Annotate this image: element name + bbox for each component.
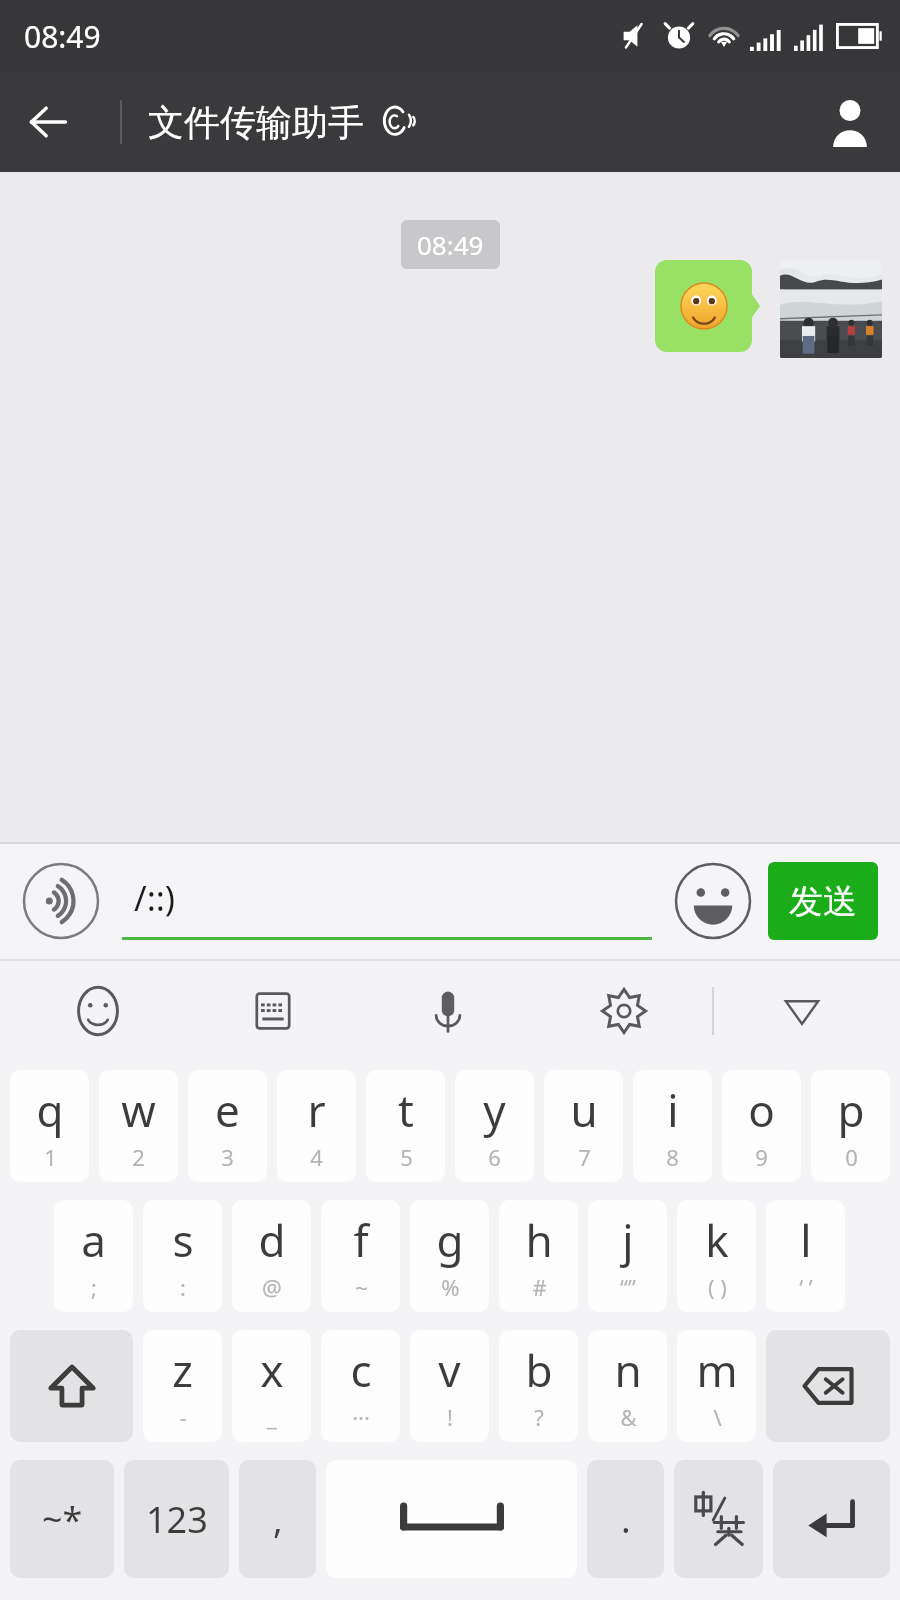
button[interactable]: Back bbox=[0, 72, 96, 172]
staticText: /::) bbox=[134, 875, 176, 921]
staticText: ( ) bbox=[708, 1272, 727, 1302]
staticText: e bbox=[215, 1080, 240, 1140]
staticText: ? bbox=[534, 1402, 544, 1432]
button[interactable]: i bbox=[633, 1070, 712, 1182]
button[interactable]: Emoji panel bbox=[10, 959, 185, 1062]
button[interactable]: q bbox=[10, 1070, 89, 1182]
staticText: ··· bbox=[352, 1402, 370, 1432]
staticText: ~* bbox=[42, 1495, 83, 1544]
button[interactable]: y bbox=[455, 1070, 534, 1182]
button[interactable]: Voice input bbox=[22, 862, 100, 940]
staticText: c bbox=[350, 1340, 372, 1400]
staticText: h bbox=[525, 1210, 553, 1270]
button[interactable]: Keyboard layout bbox=[185, 959, 360, 1062]
staticText: @ bbox=[262, 1272, 282, 1302]
button[interactable]: l bbox=[766, 1200, 845, 1312]
button[interactable]: m bbox=[677, 1330, 756, 1442]
staticText: s bbox=[172, 1210, 194, 1270]
staticText: w bbox=[121, 1080, 156, 1140]
button[interactable]: c bbox=[321, 1330, 400, 1442]
button[interactable]: j bbox=[588, 1200, 667, 1312]
button[interactable]: 发送 bbox=[768, 862, 878, 940]
staticText: p bbox=[837, 1080, 865, 1140]
button[interactable]: z bbox=[143, 1330, 222, 1442]
button[interactable]: t bbox=[366, 1070, 445, 1182]
button[interactable]: f bbox=[321, 1200, 400, 1312]
staticText: - bbox=[179, 1402, 187, 1432]
button[interactable]: . bbox=[587, 1460, 664, 1578]
button[interactable]: p bbox=[811, 1070, 890, 1182]
staticText: b bbox=[525, 1340, 553, 1400]
staticText: i bbox=[667, 1080, 679, 1140]
staticText: r bbox=[307, 1080, 326, 1140]
staticText: o bbox=[748, 1080, 775, 1140]
staticText: , bbox=[273, 1495, 283, 1544]
button[interactable]: r bbox=[277, 1070, 356, 1182]
button[interactable] bbox=[655, 260, 760, 352]
button[interactable]: Enter bbox=[773, 1460, 890, 1578]
button[interactable]: b bbox=[499, 1330, 578, 1442]
button[interactable]: Hide keyboard bbox=[714, 959, 890, 1062]
staticText: 发送 bbox=[789, 880, 857, 923]
staticText: 08:49 bbox=[417, 227, 484, 262]
button[interactable] bbox=[780, 260, 882, 358]
button[interactable]: w bbox=[99, 1070, 178, 1182]
staticText: 1 bbox=[44, 1142, 57, 1172]
staticText: ! bbox=[447, 1402, 453, 1432]
staticText: 5 bbox=[400, 1142, 413, 1172]
staticText: g bbox=[436, 1210, 464, 1270]
staticText: ~ bbox=[355, 1272, 368, 1302]
button[interactable]: x bbox=[232, 1330, 311, 1442]
button[interactable]: Emoji bbox=[674, 862, 752, 940]
staticText: n bbox=[614, 1340, 642, 1400]
staticText: % bbox=[441, 1272, 460, 1302]
button[interactable]: Shift bbox=[10, 1330, 133, 1442]
staticText: m bbox=[696, 1340, 738, 1400]
button[interactable]: s bbox=[143, 1200, 222, 1312]
staticText: _ bbox=[267, 1402, 277, 1432]
button[interactable]: , bbox=[239, 1460, 316, 1578]
staticText: 0 bbox=[845, 1142, 858, 1172]
button[interactable]: o bbox=[722, 1070, 801, 1182]
button[interactable]: Settings bbox=[536, 959, 712, 1062]
button[interactable]: ~* bbox=[10, 1460, 114, 1578]
button[interactable]: n bbox=[588, 1330, 667, 1442]
staticText: v bbox=[438, 1340, 461, 1400]
button[interactable]: Voice bbox=[360, 959, 536, 1062]
staticText: \ bbox=[713, 1402, 722, 1432]
staticText: # bbox=[532, 1272, 547, 1302]
staticText: l bbox=[800, 1210, 812, 1270]
staticText: y bbox=[483, 1080, 506, 1140]
button[interactable]: Switch Chinese English bbox=[674, 1460, 763, 1578]
staticText: ; bbox=[91, 1272, 97, 1302]
staticText: k bbox=[705, 1210, 729, 1270]
button[interactable]: k bbox=[677, 1200, 756, 1312]
staticText: ‘ ’ bbox=[799, 1272, 813, 1302]
staticText: z bbox=[172, 1340, 193, 1400]
button[interactable]: g bbox=[410, 1200, 489, 1312]
button[interactable]: e bbox=[188, 1070, 267, 1182]
button[interactable]: Space bbox=[326, 1460, 577, 1578]
button[interactable]: /::) bbox=[122, 862, 652, 940]
staticText: 文件传输助手 bbox=[148, 100, 364, 145]
button[interactable]: u bbox=[544, 1070, 623, 1182]
button[interactable]: v bbox=[410, 1330, 489, 1442]
button[interactable]: 123 bbox=[124, 1460, 229, 1578]
staticText: 123 bbox=[146, 1495, 208, 1544]
staticText: 8 bbox=[666, 1142, 679, 1172]
staticText: 3 bbox=[221, 1142, 234, 1172]
button[interactable]: d bbox=[232, 1200, 311, 1312]
button[interactable]: h bbox=[499, 1200, 578, 1312]
button[interactable]: a bbox=[54, 1200, 133, 1312]
staticText: 6 bbox=[488, 1142, 501, 1172]
staticText: 9 bbox=[755, 1142, 768, 1172]
staticText: u bbox=[570, 1080, 598, 1140]
button[interactable]: Profile bbox=[800, 72, 900, 172]
staticText: : bbox=[180, 1272, 186, 1302]
staticText: d bbox=[258, 1210, 286, 1270]
staticText: x bbox=[260, 1340, 284, 1400]
staticText: a bbox=[81, 1210, 106, 1270]
staticText: t bbox=[398, 1080, 414, 1140]
button[interactable]: Backspace bbox=[766, 1330, 890, 1442]
staticText: 2 bbox=[132, 1142, 145, 1172]
